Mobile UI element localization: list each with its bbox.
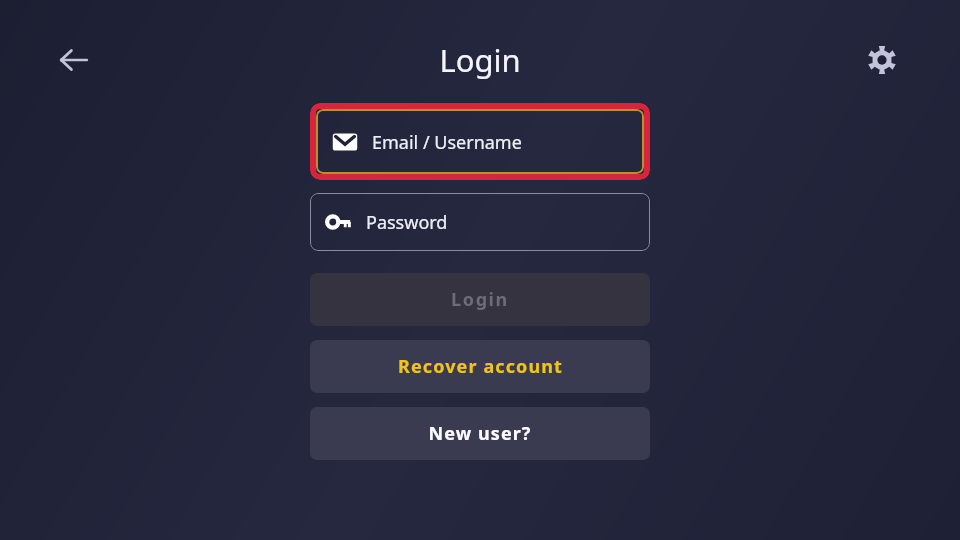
button[interactable]: Email / Username [316,109,644,174]
staticText: Email / Username [372,130,522,155]
button[interactable]: Back [46,32,102,88]
button[interactable]: Password [310,193,650,251]
staticText: Login [451,287,509,312]
staticText: New user? [428,421,532,446]
button[interactable]: New user? [310,407,650,460]
button[interactable]: Login [310,273,650,326]
staticText: Login [439,39,521,81]
button[interactable]: Recover account [310,340,650,393]
button[interactable]: Settings [856,34,908,86]
staticText: Recover account [398,354,563,379]
staticText: Password [366,210,448,235]
